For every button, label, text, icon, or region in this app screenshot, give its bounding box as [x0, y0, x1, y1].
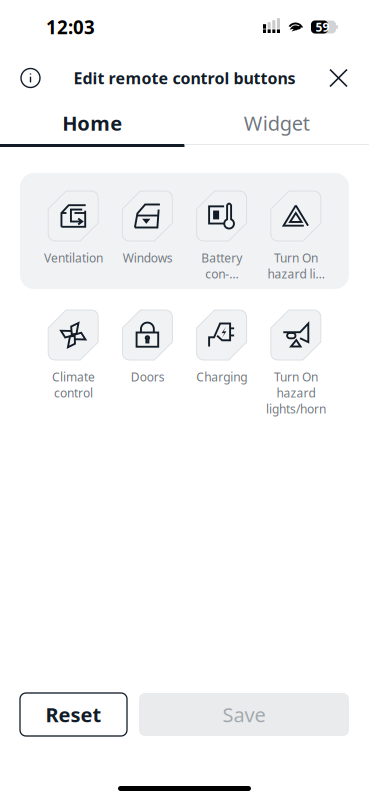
staticText: Edit remote control buttons	[73, 67, 295, 89]
staticText: Battery con-…	[201, 250, 242, 282]
staticText: Charging	[196, 369, 247, 385]
button[interactable]: Climate control	[39, 310, 107, 426]
staticText: Doors	[130, 369, 164, 385]
button[interactable]: Widget	[184, 102, 369, 147]
button[interactable]: Charging	[188, 310, 256, 426]
button[interactable]: Reset	[20, 693, 127, 736]
button[interactable]: Save	[139, 693, 349, 736]
button[interactable]: Home	[0, 102, 184, 147]
button[interactable]: Turn On hazard lights/horn	[262, 310, 330, 426]
staticText: Reset	[45, 701, 101, 728]
staticText: Save	[222, 701, 265, 728]
button[interactable]: Windows	[113, 191, 181, 289]
staticText: 59	[315, 19, 329, 35]
staticText: Windows	[122, 250, 172, 266]
button[interactable]: Ventilation	[39, 191, 107, 289]
button[interactable]: Doors	[113, 310, 181, 426]
staticText: Home	[62, 110, 122, 136]
staticText: Turn On hazard li…	[267, 250, 324, 282]
button[interactable]: Battery con-…	[188, 191, 256, 289]
button[interactable]: Close	[320, 59, 357, 96]
staticText: Climate control	[52, 369, 95, 401]
staticText: Ventilation	[44, 250, 103, 266]
button[interactable]: Information	[12, 59, 49, 96]
button[interactable]: Turn On hazard li…	[262, 191, 330, 289]
staticText: Turn On hazard lights/horn	[266, 369, 326, 417]
staticText: 12:03	[46, 15, 95, 39]
staticText: Widget	[244, 110, 310, 136]
